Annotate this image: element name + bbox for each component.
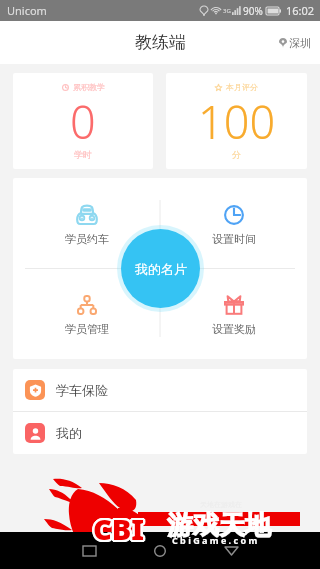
button[interactable]: 累积教学 (13, 73, 153, 169)
staticText: 设置奖励 (212, 322, 256, 336)
staticText: CBI (94, 507, 146, 546)
staticText: CBI (94, 511, 146, 550)
staticText: 学员管理 (65, 322, 109, 336)
staticText: 3G (223, 7, 231, 15)
staticText: CBI (94, 510, 146, 549)
staticText: 90% (243, 4, 263, 18)
staticText: 游戏天地 (167, 509, 271, 542)
staticText: 我的名片 (135, 261, 187, 277)
staticText: CBI (92, 511, 144, 550)
staticText: CBI (95, 508, 147, 547)
staticText: 设置时间 (212, 232, 256, 246)
staticText: 学员约车 (65, 232, 109, 246)
staticText: CBI (92, 508, 144, 547)
button[interactable]: 深圳 (279, 36, 320, 50)
staticText: CBI (91, 509, 143, 548)
button[interactable]: Back (216, 536, 246, 566)
staticText: CBI (95, 510, 147, 549)
staticText: 深圳 (289, 36, 311, 50)
button[interactable]: 学员管理 (13, 268, 160, 359)
button[interactable]: 学车保险 (13, 369, 307, 411)
button[interactable]: 学员约车 (13, 178, 160, 268)
staticText: 教练端 (135, 32, 186, 53)
staticText: 累积教学 (73, 82, 105, 92)
button[interactable]: 我的名片 (121, 229, 200, 308)
button[interactable]: Home (145, 536, 175, 566)
staticText: CBI (93, 509, 145, 548)
staticText: CBI (92, 507, 144, 546)
staticText: CBI (93, 511, 145, 550)
staticText: Unicom (7, 3, 47, 18)
staticText: CBI (92, 509, 144, 548)
staticText: 我的 (56, 425, 82, 441)
button[interactable]: Recents (74, 536, 104, 566)
staticText: 100 (198, 91, 276, 152)
staticText: CBI (93, 509, 145, 548)
staticText: CBI (91, 510, 143, 549)
staticText: 16:02 (286, 3, 315, 18)
staticText: CBI (95, 509, 147, 548)
button[interactable]: 设置奖励 (160, 268, 307, 359)
staticText: 分 (232, 149, 241, 160)
staticText: CBI (93, 510, 145, 549)
staticText: C b i G a m e . c o m (172, 534, 258, 546)
staticText: CBI (93, 508, 145, 547)
button[interactable]: 设置时间 (160, 178, 307, 268)
staticText: CBI (94, 509, 146, 548)
staticText: 学车保险 (56, 382, 108, 398)
staticText: CBI (93, 507, 145, 546)
staticText: CBI (91, 508, 143, 547)
staticText: CBI (92, 510, 144, 549)
staticText: 0 (70, 91, 96, 152)
button[interactable]: 我的 (13, 412, 307, 454)
staticText: CBI (94, 508, 146, 547)
staticText: 本月评分 (226, 82, 258, 92)
staticText: 学时 (74, 149, 92, 160)
button[interactable]: 本月评分 (166, 73, 307, 169)
